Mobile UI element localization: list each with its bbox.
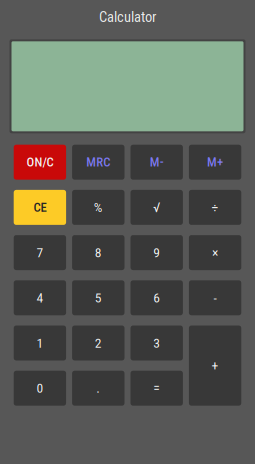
button[interactable]: .: [72, 371, 124, 406]
button[interactable]: 6: [130, 280, 183, 315]
staticText: 5: [95, 290, 102, 306]
staticText: +: [212, 358, 219, 373]
button[interactable]: 3: [130, 325, 183, 360]
button[interactable]: 4: [14, 280, 66, 315]
staticText: M+: [207, 155, 223, 170]
button[interactable]: 7: [14, 235, 66, 270]
button[interactable]: M-: [130, 145, 183, 180]
button[interactable]: MRC: [72, 145, 124, 180]
staticText: 6: [153, 290, 160, 306]
button[interactable]: 9: [130, 235, 183, 270]
button[interactable]: ×: [189, 235, 241, 270]
button[interactable]: %: [72, 190, 124, 225]
button[interactable]: CE: [14, 190, 66, 225]
staticText: M-: [150, 155, 164, 170]
button[interactable]: 8: [72, 235, 124, 270]
staticText: %: [94, 199, 103, 215]
staticText: 9: [153, 245, 160, 260]
staticText: =: [153, 380, 160, 396]
staticText: MRC: [86, 155, 110, 170]
button[interactable]: =: [130, 371, 183, 406]
button[interactable]: √: [130, 190, 183, 225]
button[interactable]: +: [189, 325, 241, 406]
staticText: 4: [36, 290, 43, 306]
staticText: ×: [212, 245, 218, 260]
staticText: Calculator: [99, 8, 156, 25]
staticText: .: [96, 380, 100, 396]
staticText: CE: [33, 200, 46, 215]
staticText: √: [153, 199, 160, 215]
button[interactable]: 5: [72, 280, 124, 315]
staticText: ÷: [212, 199, 219, 215]
staticText: -: [214, 290, 217, 306]
staticText: 2: [95, 335, 102, 351]
button[interactable]: 0: [14, 371, 66, 406]
staticText: ON/C: [26, 155, 53, 170]
staticText: 7: [36, 245, 43, 260]
button[interactable]: ÷: [189, 190, 241, 225]
button[interactable]: -: [189, 280, 241, 315]
staticText: 3: [153, 335, 160, 351]
button[interactable]: 1: [14, 325, 66, 360]
staticText: 8: [95, 245, 102, 260]
staticText: 1: [36, 335, 43, 351]
staticText: 0: [36, 380, 43, 396]
button[interactable]: ON/C: [14, 145, 66, 180]
button[interactable]: M+: [189, 145, 241, 180]
button[interactable]: 2: [72, 325, 124, 360]
